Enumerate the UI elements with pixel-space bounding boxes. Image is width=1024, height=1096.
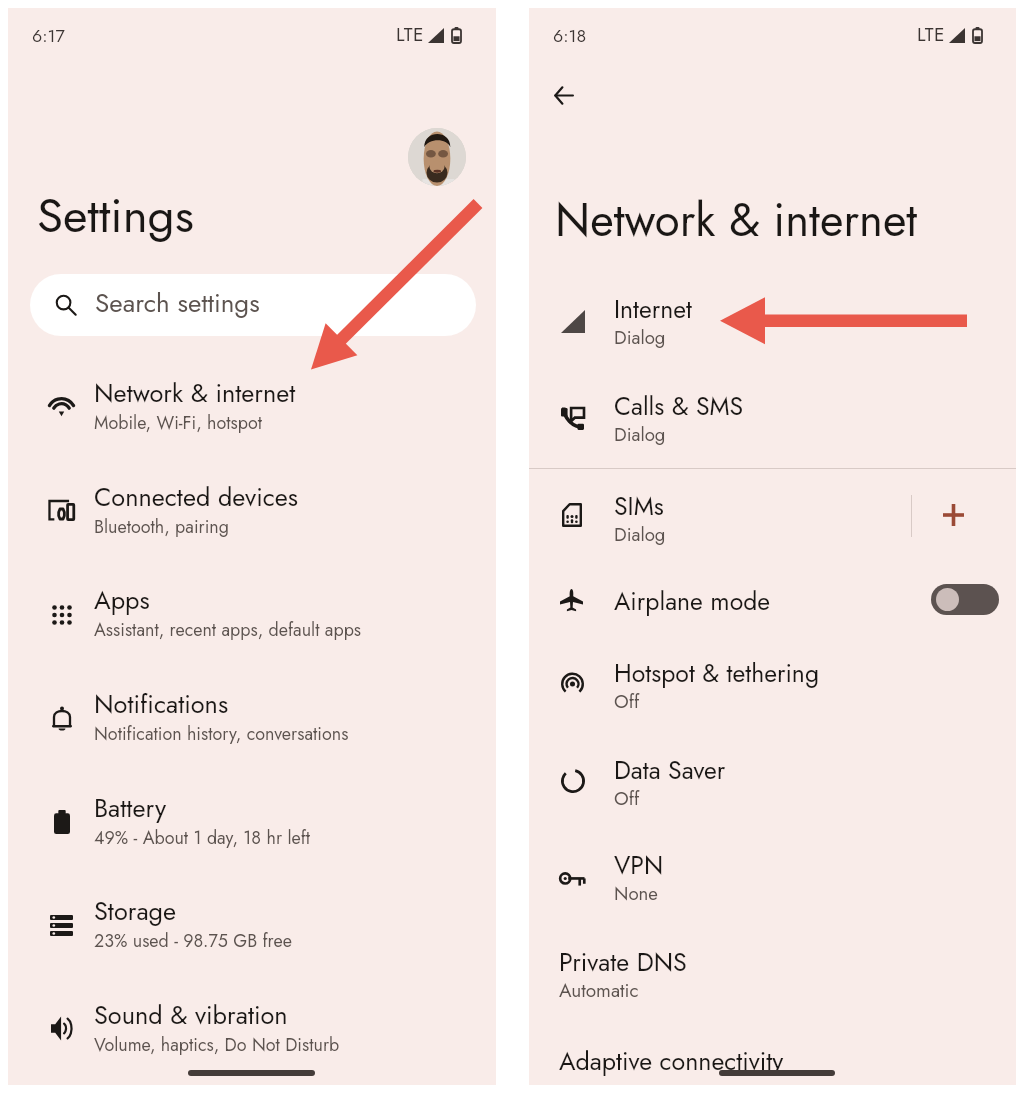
staticText: LTE xyxy=(396,21,425,48)
staticText: SIMs xyxy=(614,488,664,524)
staticText: Off xyxy=(614,785,640,812)
staticText: 6:18 xyxy=(553,23,587,49)
staticText: LTE xyxy=(917,21,946,48)
staticText: 49% - About 1 day, 18 hr left xyxy=(94,825,311,851)
button[interactable] xyxy=(8,361,496,449)
staticText: Dialog xyxy=(614,421,666,448)
staticText: Hotspot & tethering xyxy=(614,655,820,691)
staticText: 6:17 xyxy=(32,23,65,49)
staticText: Notification history, conversations xyxy=(94,721,349,747)
staticText: Search settings xyxy=(95,284,260,322)
button[interactable] xyxy=(8,776,496,864)
staticText: None xyxy=(614,880,658,907)
staticText: Airplane mode xyxy=(614,583,771,619)
staticText: Apps xyxy=(94,582,150,619)
staticText: VPN xyxy=(614,847,664,883)
button[interactable]: Account avatar xyxy=(408,128,466,186)
button[interactable] xyxy=(529,642,1016,720)
button[interactable] xyxy=(529,375,1016,453)
staticText: Storage xyxy=(94,893,177,930)
staticText: Assistant, recent apps, default apps xyxy=(94,617,362,643)
staticText: Internet xyxy=(614,291,693,327)
staticText: Automatic xyxy=(559,977,639,1004)
button[interactable] xyxy=(529,278,1016,356)
staticText: Data Saver xyxy=(614,752,726,788)
staticText: Notifications xyxy=(94,686,229,723)
staticText: Calls & SMS xyxy=(614,388,744,424)
button[interactable] xyxy=(529,739,1016,817)
staticText: Adaptive connectivity xyxy=(559,1043,784,1079)
staticText: Dialog xyxy=(614,324,666,351)
button[interactable] xyxy=(8,880,496,968)
button[interactable] xyxy=(529,834,1016,912)
staticText: Off xyxy=(614,688,640,715)
staticText: Connected devices xyxy=(94,479,299,516)
button[interactable] xyxy=(529,570,1016,628)
staticText: Mobile, Wi-Fi, hotspot xyxy=(94,410,262,436)
staticText: Sound & vibration xyxy=(94,997,288,1034)
button[interactable]: Search settings xyxy=(30,274,476,336)
button[interactable] xyxy=(8,672,496,760)
button[interactable]: Airplane mode toggle xyxy=(931,584,999,615)
button[interactable] xyxy=(8,983,496,1071)
staticText: 23% used - 98.75 GB free xyxy=(94,928,292,954)
staticText: Bluetooth, pairing xyxy=(94,514,229,540)
staticText: Settings xyxy=(37,181,194,250)
button[interactable] xyxy=(8,465,496,553)
staticText: Private DNS xyxy=(559,944,687,980)
button[interactable] xyxy=(529,475,1016,553)
button[interactable] xyxy=(8,568,496,656)
staticText: Dialog xyxy=(614,521,666,548)
staticText: Network & internet xyxy=(555,187,918,253)
staticText: Network & internet xyxy=(94,375,296,412)
button[interactable]: Back xyxy=(538,69,590,121)
staticText: Battery xyxy=(94,790,167,827)
button[interactable]: Add SIM xyxy=(931,492,975,536)
staticText: Volume, haptics, Do Not Disturb xyxy=(94,1032,340,1058)
